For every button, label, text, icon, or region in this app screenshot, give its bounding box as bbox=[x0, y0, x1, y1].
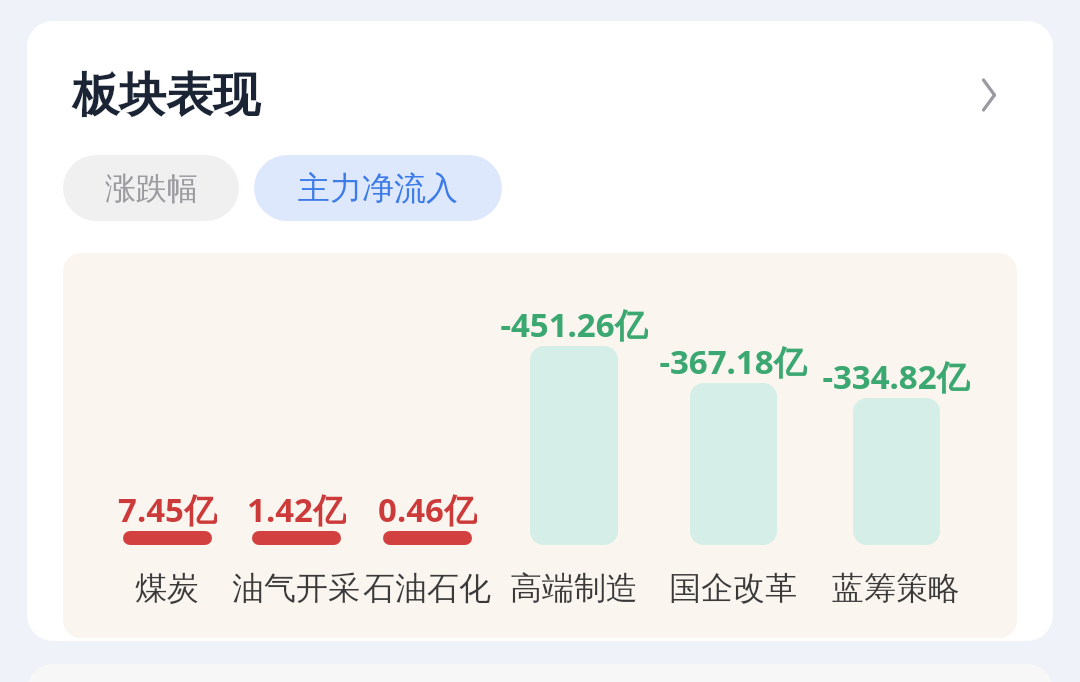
staticText: 板块表现 bbox=[72, 66, 260, 125]
button[interactable]: 主力净流入 bbox=[254, 155, 502, 221]
button[interactable]: 涨跌幅 bbox=[63, 155, 239, 221]
button[interactable] bbox=[221, 285, 371, 610]
staticText: -367.18亿 bbox=[659, 339, 807, 381]
button[interactable] bbox=[499, 285, 649, 610]
staticText: -451.26亿 bbox=[500, 302, 648, 344]
button[interactable] bbox=[658, 285, 808, 610]
staticText: 涨跌幅 bbox=[105, 169, 198, 208]
button[interactable] bbox=[821, 285, 971, 610]
staticText: 主力净流入 bbox=[298, 168, 458, 208]
button[interactable] bbox=[92, 285, 242, 610]
staticText: 7.45亿 bbox=[118, 487, 217, 529]
staticText: 国企改革 bbox=[669, 568, 797, 608]
staticText: 高端制造 bbox=[510, 568, 638, 608]
staticText: 石油石化 bbox=[363, 568, 491, 608]
button[interactable] bbox=[352, 285, 502, 610]
staticText: 油气开采 bbox=[232, 568, 360, 608]
staticText: 0.46亿 bbox=[378, 487, 477, 529]
staticText: 1.42亿 bbox=[247, 487, 346, 529]
staticText: 蓝筹策略 bbox=[832, 568, 960, 608]
staticText: -334.82亿 bbox=[822, 354, 970, 396]
button[interactable]: 板块表现 bbox=[46, 55, 1034, 135]
staticText: 煤炭 bbox=[135, 568, 199, 608]
button[interactable]: More sector performance bbox=[966, 73, 1010, 117]
